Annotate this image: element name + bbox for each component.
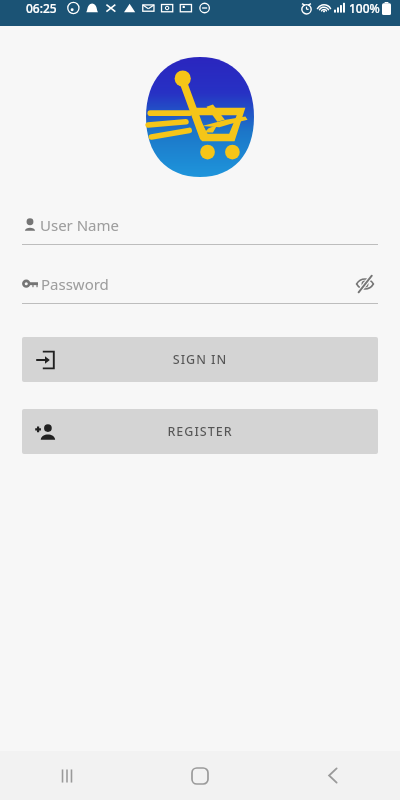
button[interactable]: Show password <box>352 271 378 297</box>
staticText: Password <box>41 274 109 294</box>
button[interactable]: Home <box>168 751 232 800</box>
staticText: User Name <box>40 215 120 235</box>
button[interactable]: REGISTER <box>22 409 378 454</box>
button[interactable]: User Name <box>22 212 378 245</box>
staticText: REGISTER <box>22 423 378 440</box>
staticText: SIGN IN <box>22 351 378 368</box>
button[interactable]: SIGN IN <box>22 337 378 382</box>
staticText: 100% <box>349 0 380 16</box>
button[interactable]: Back <box>301 751 365 800</box>
button[interactable]: Recent apps <box>35 751 99 800</box>
button[interactable]: Password <box>22 271 378 304</box>
staticText: 06:25 <box>26 0 57 16</box>
